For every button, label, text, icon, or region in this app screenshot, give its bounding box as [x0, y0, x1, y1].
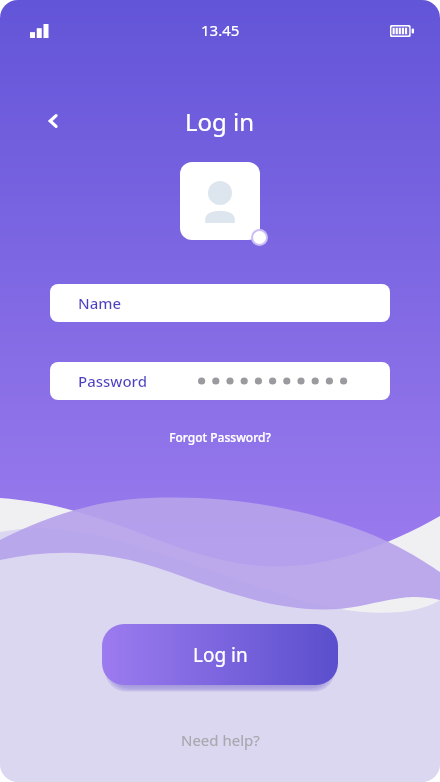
button[interactable]: Name	[50, 284, 390, 322]
staticText: Log in	[193, 642, 248, 668]
button[interactable]: Edit photo	[253, 231, 266, 244]
staticText: Password	[78, 371, 147, 391]
button[interactable]: Need help?	[173, 727, 268, 753]
button[interactable]: Password	[50, 362, 390, 400]
staticText: Name	[78, 293, 122, 313]
staticText: Log in	[185, 105, 255, 138]
button[interactable]: Back	[34, 102, 72, 140]
button[interactable]: Forgot Password?	[163, 426, 277, 448]
button[interactable]: Log in	[102, 624, 338, 685]
button[interactable]: Profile photo	[180, 162, 260, 240]
staticText: 13.45	[201, 20, 240, 40]
